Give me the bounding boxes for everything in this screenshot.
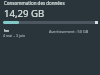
- staticText: Consommation des données: [4, 0, 65, 6]
- staticText: 14,29 GB: [4, 7, 45, 20]
- staticText: free: [4, 29, 10, 32]
- staticText: Avertissement : 50 GB: [49, 29, 89, 34]
- staticText: 4 mai – 3 juin: [3, 33, 26, 38]
